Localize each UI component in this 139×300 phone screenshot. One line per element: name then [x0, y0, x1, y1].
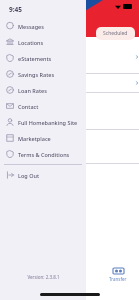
button[interactable]: Messages	[0, 18, 86, 34]
staticText: eStatements	[18, 55, 52, 62]
button[interactable]: Transfer	[113, 267, 124, 275]
staticText: Log Out	[18, 172, 40, 179]
staticText: Terms & Conditions	[18, 151, 70, 158]
button[interactable]: Savings Rates	[0, 66, 86, 82]
staticText: Version: 2.3.8.1	[27, 274, 60, 280]
staticText: Messages	[18, 23, 44, 30]
button[interactable]: Log Out	[0, 167, 86, 183]
staticText: Savings Rates	[18, 71, 55, 78]
button[interactable]: Terms & Conditions	[0, 146, 86, 162]
button[interactable]: Scheduled	[96, 27, 135, 40]
staticText: Transfer	[109, 276, 127, 282]
button[interactable]: Contact	[0, 98, 86, 114]
button[interactable]: Loan Rates	[0, 82, 86, 98]
button[interactable]: Locations	[0, 34, 86, 50]
button[interactable]	[86, 74, 139, 92]
staticText: Contact	[18, 103, 39, 110]
staticText: 9:45	[9, 5, 22, 14]
staticText: Full Homebanking Site	[18, 119, 78, 126]
staticText: Marketplace	[18, 135, 51, 142]
staticText: Scheduled	[103, 30, 128, 37]
staticText: Loan Rates	[18, 87, 47, 94]
button[interactable]	[86, 40, 139, 73]
button[interactable]: Full Homebanking Site	[0, 114, 86, 130]
staticText: Locations	[18, 39, 44, 46]
button[interactable]: eStatements	[0, 50, 86, 66]
button[interactable]: Marketplace	[0, 130, 86, 146]
